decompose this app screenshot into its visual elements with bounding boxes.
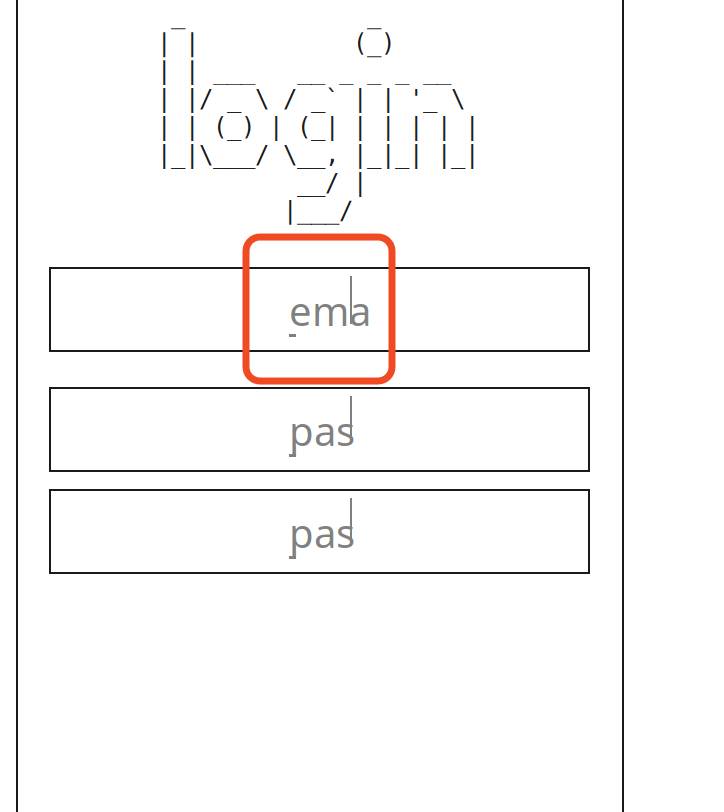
button[interactable]: pas bbox=[50, 388, 589, 471]
button[interactable]: ema bbox=[50, 268, 589, 351]
button[interactable]: pas bbox=[50, 490, 589, 573]
staticText: ema bbox=[289, 284, 371, 337]
staticText: pas bbox=[289, 506, 355, 559]
staticText: pas bbox=[289, 404, 355, 457]
staticText: _ _ | | (_) | | ___ __ _ _ _ __ | |/ _ \… bbox=[157, 1, 479, 224]
